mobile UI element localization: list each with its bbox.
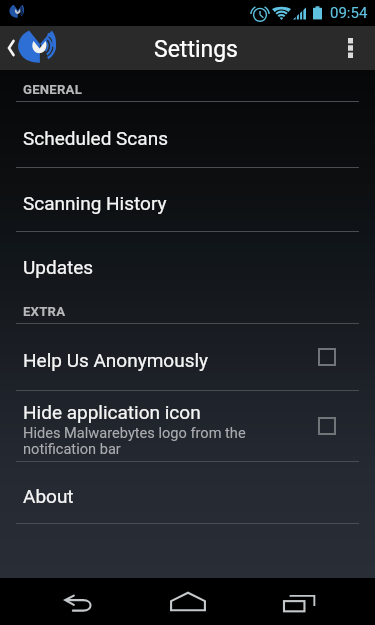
button[interactable]: Back xyxy=(30,578,126,625)
button[interactable]: More options xyxy=(330,26,375,70)
staticText: Help Us Anonymously xyxy=(23,349,209,371)
button[interactable]: Hide application icon xyxy=(0,391,375,461)
staticText: GENERAL xyxy=(23,82,82,97)
button[interactable]: About xyxy=(0,462,375,523)
staticText: Updates xyxy=(23,256,94,278)
button[interactable]: Navigate up xyxy=(0,26,64,70)
button[interactable]: Scanning History xyxy=(0,168,375,231)
button[interactable]: Recent apps xyxy=(251,578,347,625)
staticText: Scheduled Scans xyxy=(23,127,168,149)
staticText: Hides Malwarebytes logo from the notific… xyxy=(23,424,246,457)
staticText: 09:54 xyxy=(330,4,368,22)
staticText: Settings xyxy=(154,36,238,63)
staticText: About xyxy=(23,485,74,507)
button[interactable]: Home xyxy=(140,578,236,625)
staticText: Scanning History xyxy=(23,192,167,214)
button[interactable]: Updates xyxy=(0,232,375,295)
button[interactable]: Help Us Anonymously xyxy=(0,324,375,390)
button[interactable]: Scheduled Scans xyxy=(0,102,375,167)
staticText: Hide application icon xyxy=(23,401,201,423)
staticText: EXTRA xyxy=(23,304,66,319)
